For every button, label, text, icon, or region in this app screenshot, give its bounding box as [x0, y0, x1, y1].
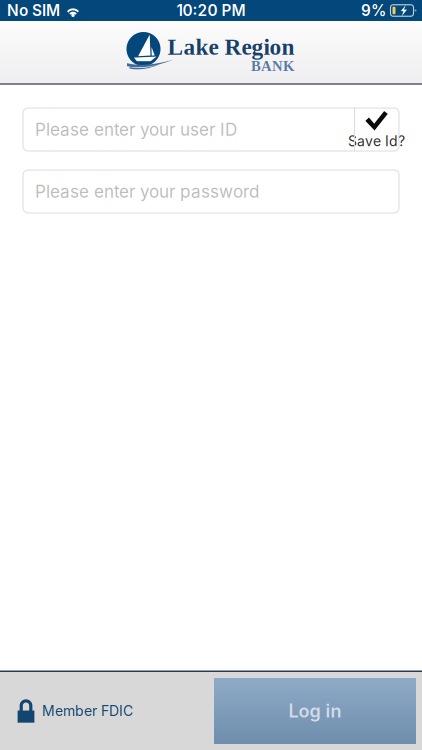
staticText: Please enter your user ID	[35, 119, 237, 140]
staticText: 9%	[361, 1, 386, 20]
button[interactable]: Log in	[214, 678, 416, 744]
staticText: Please enter your password	[35, 181, 259, 202]
staticText: Lake Region	[167, 34, 294, 60]
button[interactable]: Save Id?	[354, 108, 399, 151]
staticText: No SIM	[7, 1, 60, 20]
staticText: Member FDIC	[42, 702, 133, 719]
staticText: Log in	[288, 700, 341, 722]
staticText: 10:20 PM	[176, 1, 245, 20]
staticText: Save Id?	[348, 133, 405, 150]
button[interactable]: Member FDIC	[0, 686, 143, 736]
staticText: BANK	[251, 58, 294, 74]
